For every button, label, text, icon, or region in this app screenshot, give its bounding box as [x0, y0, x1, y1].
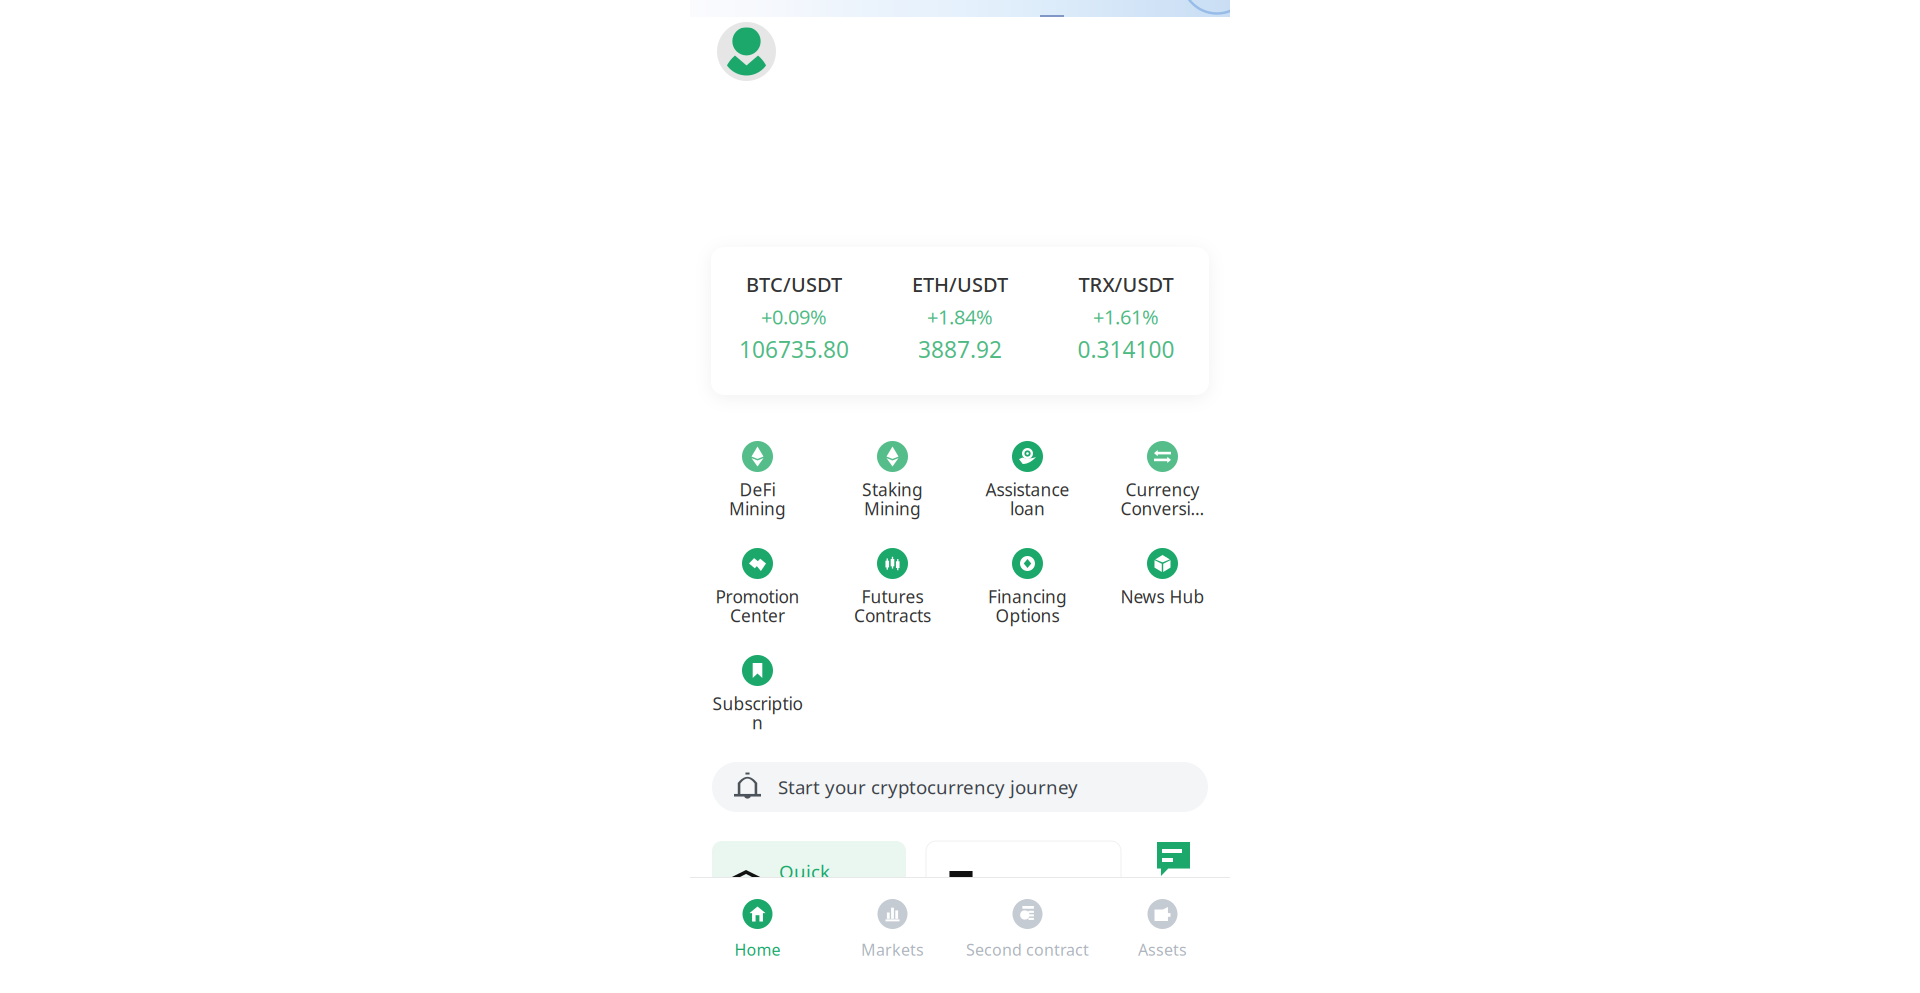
staticText: Options [995, 604, 1059, 627]
staticText: DeFi [739, 478, 775, 501]
staticText: +1.61% [1093, 304, 1159, 330]
staticText: TRX/USDT [1078, 271, 1173, 298]
button[interactable]: Futures [825, 548, 960, 655]
staticText: Home [734, 939, 780, 960]
staticText: Currency [1125, 478, 1199, 501]
button[interactable]: Markets [825, 878, 960, 993]
button[interactable]: Staking [825, 441, 960, 548]
staticText: Quick [779, 859, 830, 884]
button[interactable]: Promotion [690, 548, 825, 655]
button[interactable]: DeFi [690, 441, 825, 548]
staticText: Withdraw [994, 872, 1078, 896]
staticText: Markets [861, 939, 924, 960]
button[interactable]: BTC/USDT [711, 247, 877, 395]
button[interactable]: Assistance [960, 441, 1095, 548]
button[interactable]: Subscriptio [690, 655, 825, 762]
staticText: Assistance [985, 478, 1069, 501]
button[interactable]: Start your cryptocurrency journey [712, 762, 1208, 812]
button[interactable]: Support chat [1157, 841, 1190, 927]
staticText: News Hub [1120, 585, 1204, 608]
staticText: Staking [862, 478, 923, 501]
staticText: n [752, 711, 763, 734]
button[interactable]: News Hub [1095, 548, 1230, 655]
staticText: 3887.92 [918, 334, 1002, 364]
button[interactable]: Profile [717, 22, 776, 81]
button[interactable]: Assets [1095, 878, 1230, 993]
button[interactable]: ETH/USDT [877, 247, 1043, 395]
button[interactable]: Financing [960, 548, 1095, 655]
staticText: Center [730, 604, 785, 627]
staticText: +0.09% [761, 304, 827, 330]
staticText: Futures [861, 585, 923, 608]
staticText: Mining [864, 497, 921, 520]
staticText: loan [1010, 497, 1045, 520]
button[interactable]: Second contract [960, 878, 1095, 993]
button[interactable]: Withdraw [926, 841, 1121, 927]
staticText: Financing [988, 585, 1067, 608]
staticText: Mining [729, 497, 786, 520]
button[interactable]: Currency [1095, 441, 1230, 548]
staticText: Second contract [966, 939, 1089, 960]
staticText: Subscriptio [712, 692, 802, 715]
staticText: Start your cryptocurrency journey [778, 775, 1078, 799]
staticText: BTC/USDT [746, 271, 842, 298]
staticText: Conversi… [1120, 497, 1204, 520]
staticText: +1.84% [927, 304, 993, 330]
button[interactable]: Quick [712, 841, 906, 927]
staticText: Contracts [854, 604, 931, 627]
staticText: 0.314100 [1077, 334, 1174, 364]
button[interactable]: Home [690, 878, 825, 993]
staticText: Promotion [715, 585, 799, 608]
staticText: Assets [1138, 939, 1187, 960]
button[interactable]: TRX/USDT [1043, 247, 1209, 395]
staticText: 106735.80 [739, 334, 849, 364]
staticText: ETH/USDT [912, 271, 1008, 298]
